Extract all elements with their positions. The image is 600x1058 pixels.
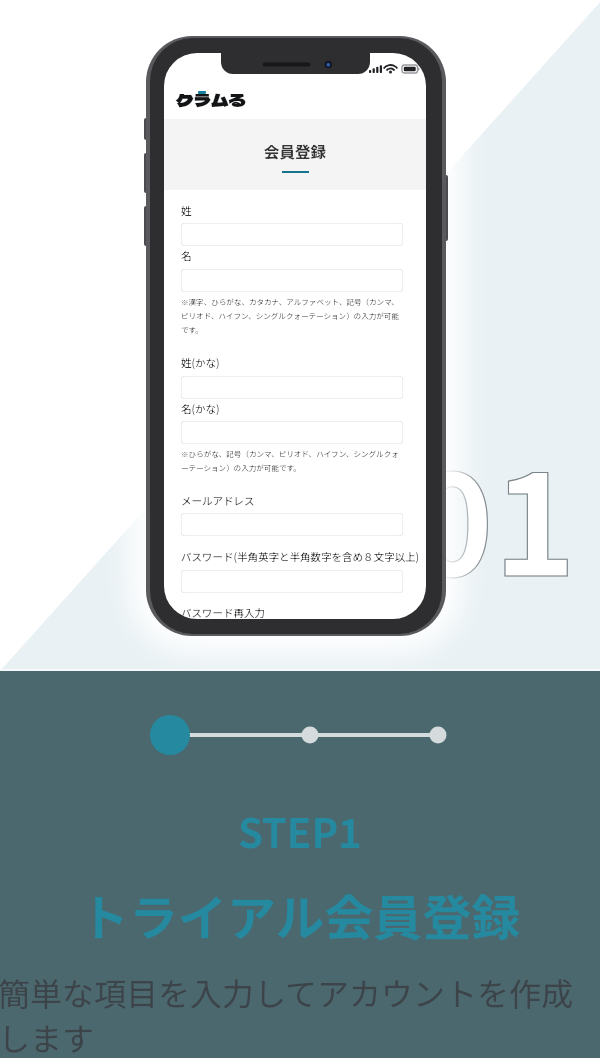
button[interactable]: Text field <box>181 223 403 246</box>
staticText: ※漢字、ひらがな、カタカナ、アルファベット、記号（カンマ、ピリオド、ハイフン、シ… <box>181 296 403 336</box>
staticText: 名 <box>181 248 192 263</box>
button[interactable]: Text field <box>181 376 403 399</box>
button[interactable]: Text field <box>181 513 403 536</box>
staticText: メールアドレス <box>181 493 255 508</box>
staticText: 簡単な項目を入力してアカウントを作成します <box>0 969 598 1058</box>
staticText: 01 <box>411 414 577 617</box>
staticText: ※ひらがな、記号（カンマ、ピリオド、ハイフン、シングルクォーテーション）の入力が… <box>181 448 403 474</box>
staticText: 姓(かな) <box>181 355 220 370</box>
staticText: トライアル会員登録 <box>80 879 521 950</box>
staticText: パスワード(半角英字と半角数字を含め８文字以上) <box>181 549 420 564</box>
button[interactable]: Text field <box>181 570 403 593</box>
staticText: 01 <box>411 414 577 617</box>
button[interactable]: Text field <box>181 421 403 444</box>
staticText: 会員登録 <box>264 140 327 162</box>
staticText: クラムる <box>176 87 246 112</box>
staticText: STEP1 <box>238 802 362 860</box>
staticText: パスワード再入力 <box>181 605 265 619</box>
button[interactable]: Text field <box>181 269 403 292</box>
staticText: 名(かな) <box>181 401 220 416</box>
staticText: 姓 <box>181 203 192 218</box>
